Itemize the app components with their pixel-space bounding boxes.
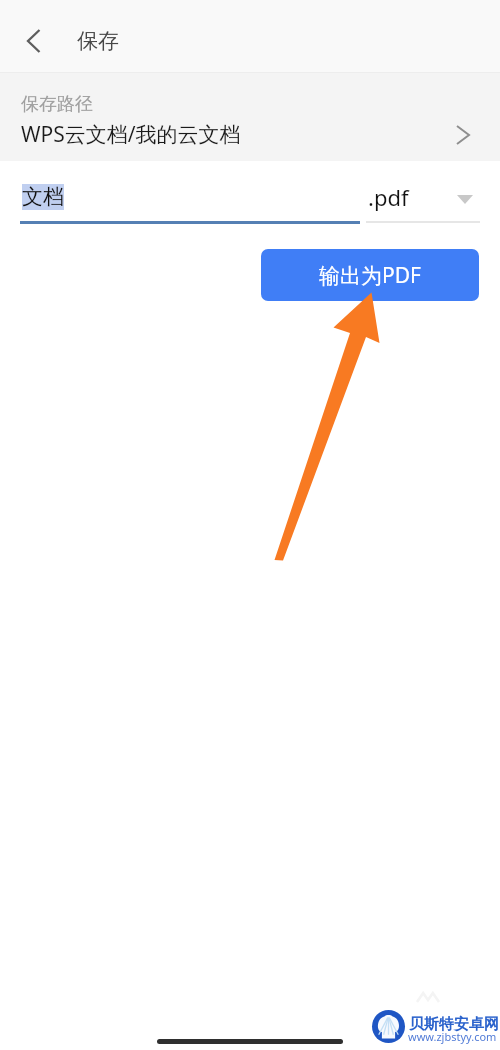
staticText: 输出为PDF xyxy=(319,261,421,290)
staticText: 文档 xyxy=(22,184,64,210)
button[interactable]: Back xyxy=(13,21,53,61)
staticText: 贝斯特安卓网 xyxy=(409,1015,499,1034)
staticText: .pdf xyxy=(368,182,409,212)
staticText: 保存路径 xyxy=(21,93,93,116)
staticText: WPS云文档/我的云文档 xyxy=(21,120,241,149)
button[interactable]: .pdf xyxy=(366,172,480,224)
staticText: 保存 xyxy=(77,28,119,54)
staticText: www.zjbstyy.com xyxy=(408,1029,497,1044)
button[interactable]: 文档 xyxy=(20,172,360,224)
button[interactable]: 保存路径 xyxy=(0,73,500,161)
button[interactable]: 输出为PDF xyxy=(261,249,479,301)
